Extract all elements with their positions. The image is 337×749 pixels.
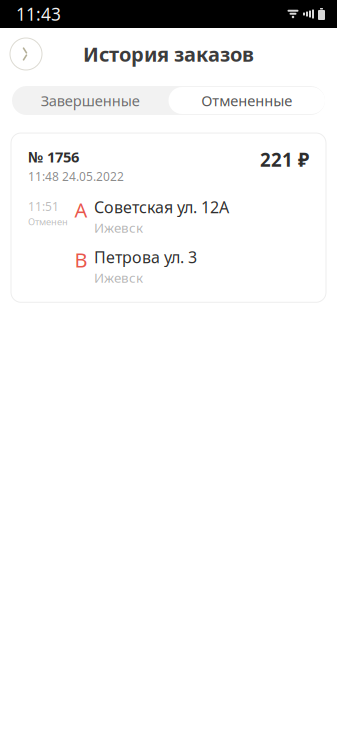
staticText: Петрова ул. 3: [94, 246, 197, 268]
button[interactable]: № 1756: [11, 133, 326, 302]
staticText: Завершенные: [41, 91, 140, 110]
staticText: B: [74, 246, 87, 273]
staticText: Советская ул. 12А: [94, 196, 229, 218]
staticText: Отменен: [28, 215, 68, 228]
staticText: Ижевск: [94, 269, 143, 286]
staticText: 11:48 24.05.2022: [28, 168, 124, 184]
staticText: Ижевск: [94, 219, 143, 236]
staticText: 11:51: [28, 198, 59, 214]
staticText: № 1756: [28, 147, 79, 166]
button[interactable]: Back: [10, 38, 42, 70]
staticText: История заказов: [83, 41, 254, 67]
button[interactable]: Завершенные: [12, 86, 168, 115]
button[interactable]: Отмененные: [168, 87, 325, 114]
staticText: 11:43: [16, 2, 61, 25]
staticText: Отмененные: [201, 91, 292, 110]
staticText: A: [74, 196, 87, 223]
staticText: 221 ₽: [260, 147, 309, 172]
